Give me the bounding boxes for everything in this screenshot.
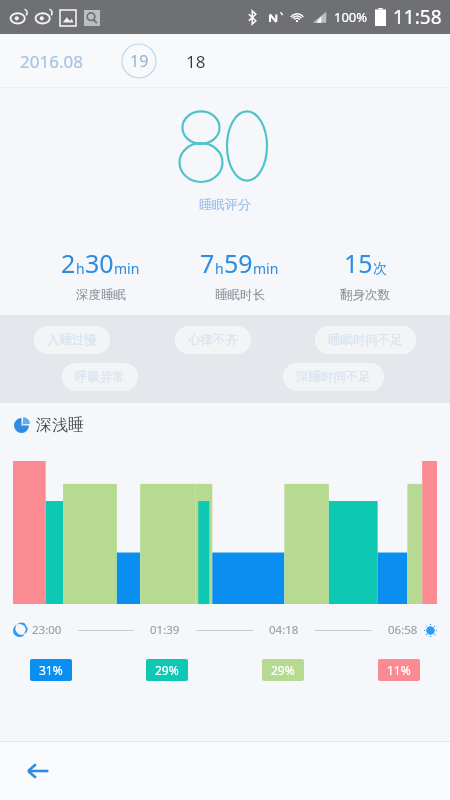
- staticText: 23:00: [32, 622, 62, 638]
- staticText: 呼吸异常: [75, 369, 125, 385]
- staticText: 入睡过慢: [47, 332, 97, 348]
- staticText: h: [76, 259, 85, 278]
- button[interactable]: 29%: [262, 659, 304, 681]
- staticText: 06:58: [388, 622, 418, 638]
- staticText: 31%: [39, 662, 63, 678]
- staticText: 59: [224, 246, 253, 280]
- staticText: min: [253, 259, 279, 278]
- button[interactable]: 入睡过慢: [34, 326, 110, 354]
- staticText: h: [215, 259, 224, 278]
- staticText: 11%: [387, 662, 411, 678]
- staticText: 30: [85, 246, 114, 280]
- button[interactable]: 心律不齐: [175, 326, 251, 354]
- staticText: 心律不齐: [188, 332, 238, 348]
- staticText: 7: [200, 246, 215, 280]
- staticText: 29%: [271, 662, 295, 678]
- button[interactable]: 11%: [378, 659, 420, 681]
- button[interactable]: Back: [16, 749, 60, 793]
- button[interactable]: 29%: [146, 659, 188, 681]
- button[interactable]: 深睡时间不足: [283, 363, 384, 391]
- staticText: 次: [373, 260, 387, 278]
- button[interactable]: 呼吸异常: [62, 363, 138, 391]
- button[interactable]: 31%: [30, 659, 72, 681]
- staticText: 100%: [334, 8, 368, 26]
- staticText: 18: [186, 50, 206, 73]
- staticText: 睡眠评分: [199, 196, 251, 212]
- button[interactable]: 睡眠时间不足: [315, 326, 416, 354]
- staticText: 睡眠时间不足: [328, 332, 403, 348]
- staticText: 04:18: [269, 622, 299, 638]
- staticText: min: [114, 259, 140, 278]
- button[interactable]: 19: [121, 43, 157, 79]
- staticText: 深度睡眠: [76, 287, 126, 303]
- staticText: 19: [130, 50, 149, 72]
- staticText: 15: [344, 246, 373, 280]
- staticText: 11:58: [393, 4, 442, 30]
- staticText: 29%: [155, 662, 179, 678]
- staticText: 2016.08: [20, 50, 83, 73]
- staticText: 2: [61, 246, 76, 280]
- staticText: 睡眠时长: [215, 287, 265, 303]
- staticText: 01:39: [150, 622, 180, 638]
- staticText: 深浅睡: [36, 415, 84, 435]
- button[interactable]: 18: [178, 43, 214, 79]
- staticText: 翻身次数: [340, 287, 390, 303]
- staticText: 深睡时间不足: [296, 369, 371, 385]
